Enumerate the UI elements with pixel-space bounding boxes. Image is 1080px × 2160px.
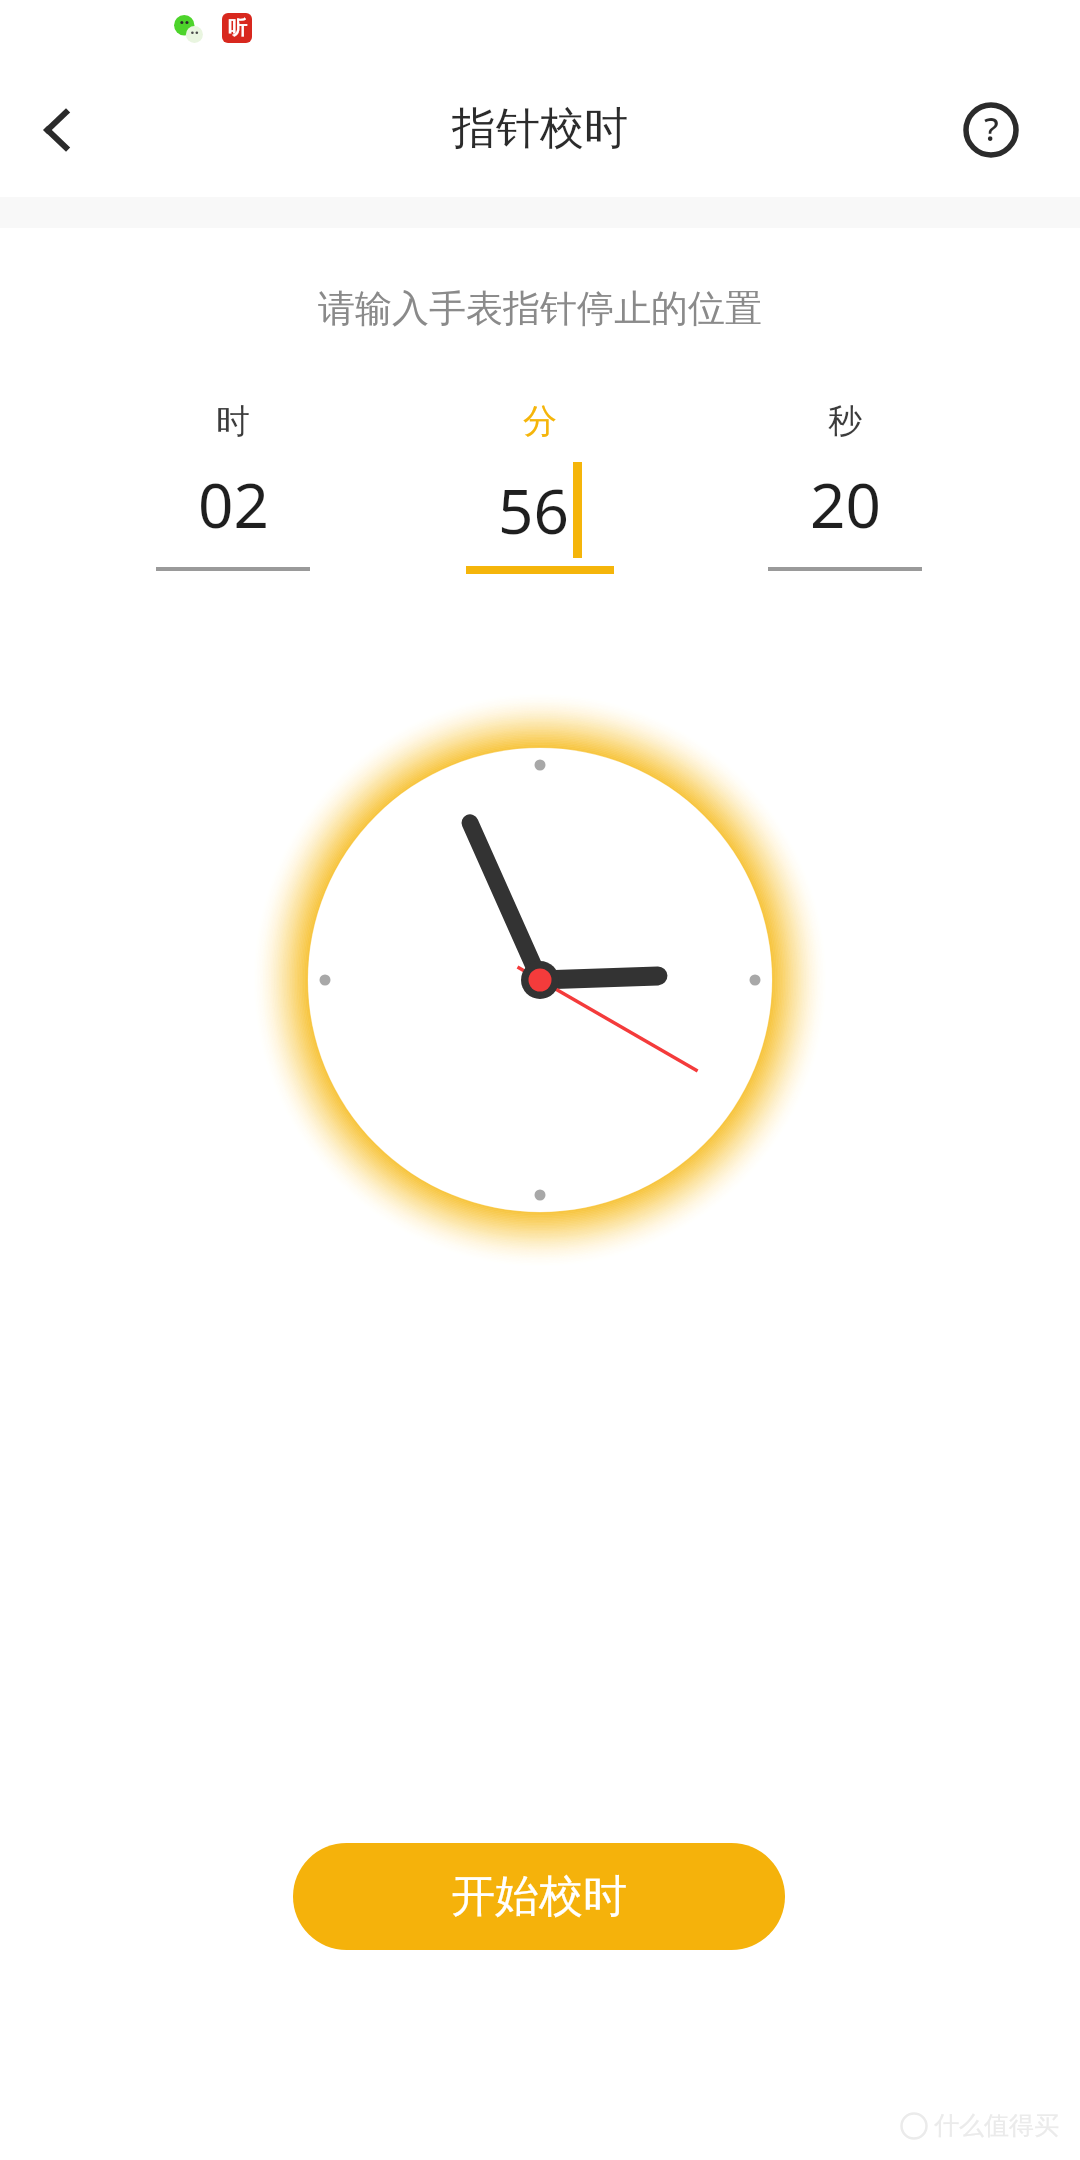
staticText: 指针校时 (452, 101, 628, 156)
staticText: 时 (216, 400, 250, 443)
button[interactable]: Back (16, 88, 100, 172)
button[interactable]: 开始校时 (293, 1843, 785, 1950)
staticText: 56 (498, 468, 569, 552)
staticText: 分 (523, 400, 557, 443)
staticText: 什么值得买 (934, 2110, 1059, 2141)
staticText: 秒 (828, 400, 862, 443)
staticText: 听 (228, 16, 247, 40)
staticText: 请输入手表指针停止的位置 (318, 285, 762, 332)
button[interactable]: Help (955, 94, 1027, 166)
staticText: 20 (810, 462, 881, 546)
staticText: ? (984, 106, 999, 151)
button[interactable]: 分 (460, 400, 620, 580)
staticText: 02 (198, 462, 269, 546)
button[interactable]: 秒 (765, 400, 925, 580)
staticText: 开始校时 (451, 1869, 627, 1924)
button[interactable]: 时 (153, 400, 313, 580)
